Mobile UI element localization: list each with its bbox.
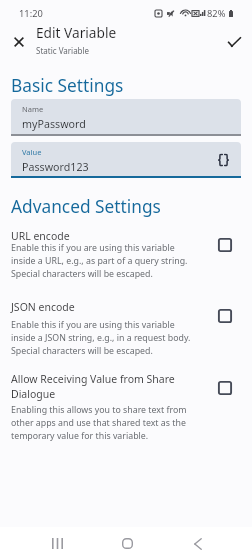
staticText: Enabling this allows you to share text f… bbox=[11, 404, 201, 442]
staticText: JSON encode bbox=[11, 300, 201, 314]
staticText: Enable this if you are using this variab… bbox=[11, 319, 201, 357]
button[interactable]: Back bbox=[174, 527, 222, 560]
button[interactable]: JSON encode bbox=[0, 294, 252, 369]
staticText: Allow Receiving Value from Share Dialogu… bbox=[11, 372, 201, 401]
button[interactable]: Home bbox=[103, 527, 151, 560]
button[interactable]: Recents bbox=[33, 527, 81, 560]
staticText: Edit Variable bbox=[36, 23, 117, 42]
staticText: myPassword bbox=[22, 117, 86, 132]
staticText: 82% bbox=[207, 7, 226, 20]
staticText: Static Variable bbox=[36, 45, 90, 56]
staticText: Advanced Settings bbox=[11, 195, 161, 219]
button[interactable]: Close bbox=[5, 28, 33, 56]
staticText: URL encode bbox=[11, 229, 201, 243]
button[interactable]: Allow Receiving Value from Share Dialogu… bbox=[0, 366, 252, 441]
staticText: Value bbox=[22, 147, 42, 157]
staticText: Basic Settings bbox=[11, 74, 124, 98]
staticText: Enable this if you are using this variab… bbox=[11, 242, 201, 280]
button[interactable]: Save bbox=[220, 28, 248, 56]
staticText: Password123 bbox=[22, 160, 89, 175]
staticText: Name bbox=[22, 104, 44, 114]
button[interactable]: Value bbox=[11, 142, 241, 178]
button[interactable]: Name bbox=[11, 99, 241, 136]
button[interactable]: URL encode bbox=[0, 223, 252, 298]
staticText: 11:20 bbox=[19, 7, 43, 20]
